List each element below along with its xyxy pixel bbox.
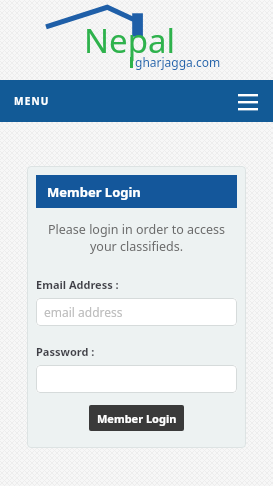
- button[interactable]: Open navigation menu: [233, 86, 263, 116]
- staticText: MENU: [14, 94, 50, 108]
- staticText: Password :: [36, 344, 95, 359]
- button[interactable]: Member Login: [89, 405, 184, 431]
- button[interactable]: Password: [36, 365, 237, 393]
- staticText: email address: [44, 304, 123, 320]
- button[interactable]: MENU: [0, 80, 273, 122]
- button[interactable]: email address: [36, 298, 237, 326]
- staticText: Member Login: [97, 411, 177, 426]
- staticText: gharjagga.com: [135, 54, 221, 70]
- staticText: Email Address :: [36, 277, 119, 292]
- staticText: Member Login: [47, 183, 141, 201]
- staticText: Nepal: [84, 18, 176, 63]
- staticText: Please login in order to access your cla…: [36, 221, 237, 255]
